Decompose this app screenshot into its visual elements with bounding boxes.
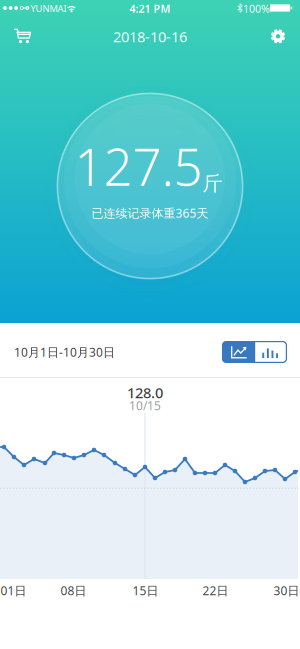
staticText: 100% (243, 1, 270, 16)
staticText: 30日 (273, 582, 299, 598)
staticText: 128.0 (127, 383, 163, 402)
staticText: 127.5斤 (74, 132, 222, 200)
staticText: 01日 (0, 582, 26, 598)
staticText: 15日 (132, 582, 158, 598)
button[interactable]: Store (4, 21, 38, 51)
staticText: 已连续记录体重365天 (91, 205, 208, 221)
staticText: 10月1日-10月30日 (14, 344, 115, 360)
button[interactable]: Bar chart (254, 341, 287, 363)
staticText: YUNMAI (30, 2, 66, 15)
staticText: 10/15 (129, 397, 161, 413)
staticText: 08日 (60, 582, 86, 598)
button[interactable]: Line chart (222, 341, 254, 363)
staticText: 22日 (202, 582, 228, 598)
staticText: 4:21 PM (129, 1, 170, 16)
button[interactable]: Settings (261, 21, 295, 51)
staticText: 2018-10-16 (113, 27, 187, 46)
